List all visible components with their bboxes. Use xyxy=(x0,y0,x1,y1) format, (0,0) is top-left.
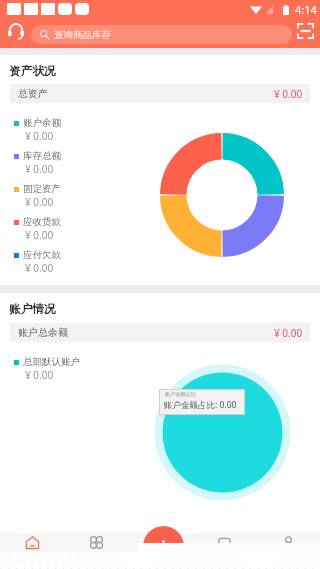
staticText: 总部默认账户 xyxy=(23,356,80,368)
staticText: 应收货款 xyxy=(23,216,61,228)
staticText: 总资产 xyxy=(18,87,48,100)
staticText: 应付欠款 xyxy=(23,249,61,261)
staticText: ¥ 0.00 xyxy=(274,326,303,340)
button[interactable]: Add xyxy=(143,526,184,567)
staticText: 账户余额 xyxy=(23,117,61,129)
staticText: ¥ 0.00 xyxy=(25,261,54,275)
button[interactable]: Apps xyxy=(64,533,128,552)
staticText: ¥ 0.00 xyxy=(25,162,54,176)
staticText: ¥ 0.00 xyxy=(25,129,54,143)
button[interactable]: 查询商品库存 xyxy=(31,25,292,44)
button[interactable]: Inbox xyxy=(192,533,256,552)
button[interactable]: Profile xyxy=(256,533,320,552)
button[interactable]: Home xyxy=(0,533,64,552)
staticText: ¥ 0.00 xyxy=(274,87,303,101)
staticText: 固定资产 xyxy=(23,183,61,195)
button[interactable]: Scan xyxy=(294,20,316,42)
staticText: ¥ 0.00 xyxy=(25,228,54,242)
button[interactable]: Customer service xyxy=(4,20,27,43)
staticText: 账户情况 xyxy=(9,302,56,317)
staticText: 库存总额 xyxy=(23,150,61,162)
button[interactable]: Report xyxy=(128,533,192,552)
staticText: ¥ 0.00 xyxy=(25,195,54,209)
staticText: 查询商品库存 xyxy=(54,29,111,41)
staticText: ¥ 0.00 xyxy=(25,368,54,382)
staticText: 账户金额占比: 0.00 xyxy=(164,399,237,411)
button[interactable]: 账户总余额 xyxy=(10,323,310,342)
staticText: 账户总余额 xyxy=(18,326,68,339)
button[interactable]: 总资产 xyxy=(10,84,310,103)
staticText: 4:14 xyxy=(295,2,317,17)
staticText: 资产状况 xyxy=(9,64,56,79)
staticText: 账户金额占比 xyxy=(165,391,197,398)
